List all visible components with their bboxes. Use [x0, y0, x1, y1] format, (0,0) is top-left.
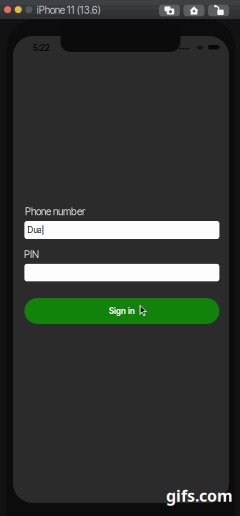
staticText: Sign in — [109, 306, 135, 316]
staticText: iPhone 11 (13.6) — [37, 4, 101, 16]
button[interactable]: Rotate — [208, 5, 229, 16]
staticText: Phone number — [25, 205, 85, 218]
button[interactable]: Sign in — [24, 298, 219, 324]
staticText: PIN — [24, 248, 39, 261]
button[interactable]: Screenshot — [159, 5, 180, 16]
staticText: gifs.com — [166, 485, 233, 506]
staticText: Dua — [27, 225, 41, 235]
staticText: 5:22 — [33, 43, 50, 53]
button[interactable]: Home — [183, 5, 204, 16]
